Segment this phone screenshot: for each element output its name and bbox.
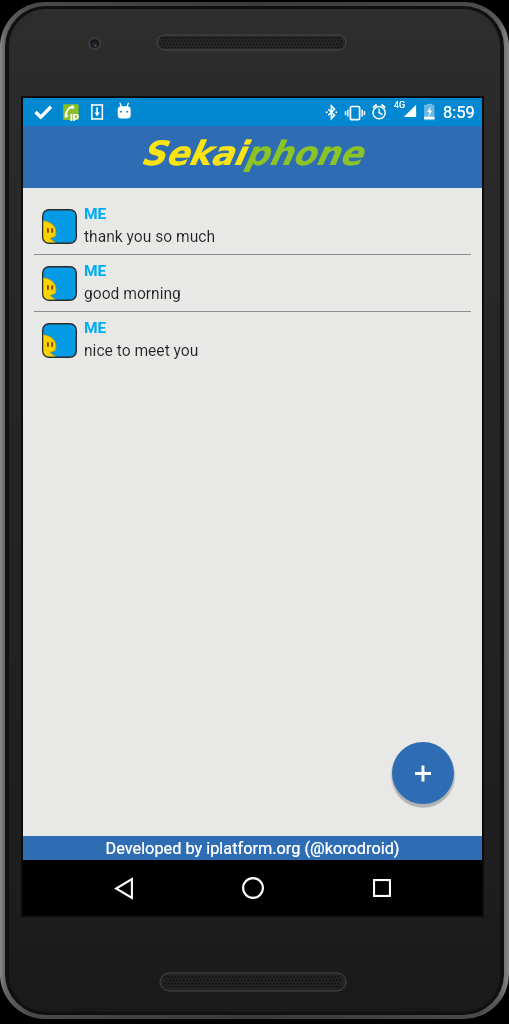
button[interactable]: ME (23, 255, 482, 312)
staticText: 4G (394, 100, 406, 111)
button[interactable]: Developed by iplatform.org (@korodroid) (23, 836, 482, 860)
staticText: 8:59 (443, 103, 475, 122)
staticText: ME (84, 319, 107, 337)
button[interactable]: Recents (359, 865, 405, 911)
button[interactable]: ME (23, 312, 482, 368)
button[interactable]: Home (230, 865, 276, 911)
staticText: ME (84, 262, 107, 280)
button[interactable]: ME (23, 198, 482, 255)
staticText: Sekaiphone (142, 134, 363, 173)
staticText: IP (70, 112, 79, 123)
staticText: Developed by iplatform.org (@korodroid) (105, 839, 400, 858)
button[interactable]: Back (101, 865, 147, 911)
staticText: nice to meet you (84, 342, 199, 360)
button[interactable]: Add (392, 742, 454, 804)
staticText: thank you so much (84, 228, 216, 246)
staticText: ME (84, 205, 107, 223)
staticText: good morning (84, 285, 181, 303)
